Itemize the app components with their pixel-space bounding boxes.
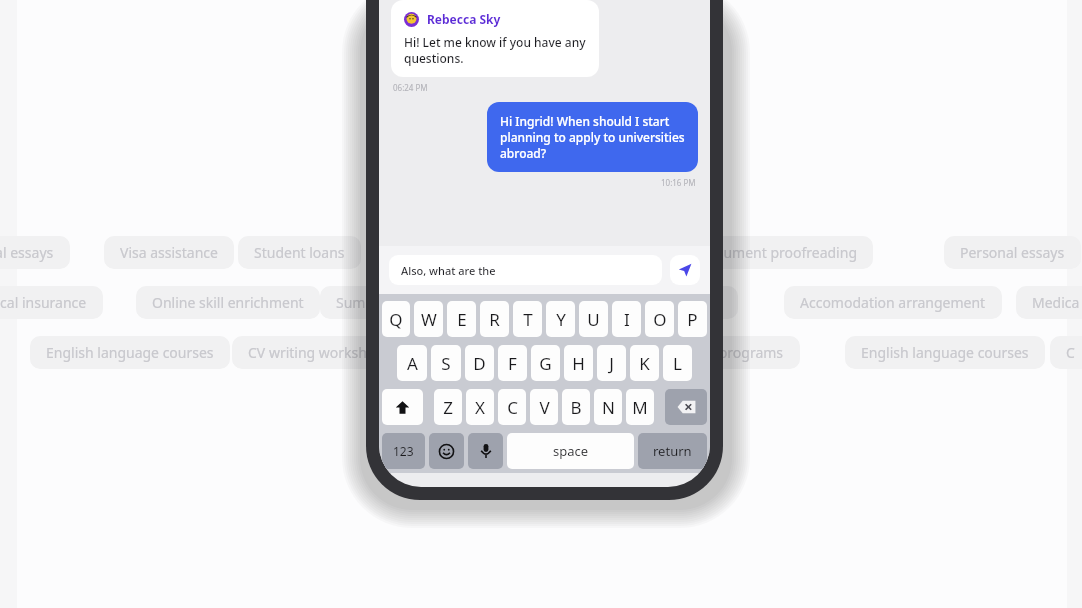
staticText: CV writing worksh — [248, 343, 367, 362]
button[interactable]: Medica — [1016, 286, 1082, 319]
button[interactable]: S — [431, 345, 461, 381]
staticText: 123 — [393, 443, 414, 459]
button[interactable]: Send — [670, 255, 700, 285]
staticText: English language courses — [861, 343, 1029, 362]
button[interactable]: CV writing worksh — [232, 336, 383, 369]
button[interactable]: F — [498, 345, 527, 381]
button[interactable]: 123 — [382, 433, 425, 469]
button[interactable]: Online skill enrichment — [136, 286, 320, 319]
staticText: C — [1066, 343, 1075, 362]
staticText: Also, what are the — [401, 263, 496, 278]
button[interactable]: Hi Ingrid! When should I start planning … — [487, 102, 698, 172]
staticText: Rebecca Sky — [427, 11, 501, 27]
button[interactable]: Z — [434, 389, 462, 425]
staticText: I — [624, 308, 630, 331]
staticText: Summ — [336, 293, 379, 312]
staticText: Q — [389, 308, 403, 331]
button[interactable]: Rebecca Sky — [391, 0, 599, 77]
button[interactable]: N — [594, 389, 622, 425]
staticText: C — [507, 396, 518, 419]
button[interactable]: P — [678, 301, 707, 337]
staticText: M — [632, 396, 648, 419]
button[interactable]: Y — [546, 301, 575, 337]
button[interactable]: Visa assistance — [104, 236, 234, 269]
button[interactable]: English language courses — [845, 336, 1045, 369]
button[interactable]: Voice input — [468, 433, 503, 469]
button[interactable]: V — [530, 389, 558, 425]
staticText: G — [539, 352, 552, 375]
button[interactable]: Backspace — [665, 389, 707, 425]
staticText: 10:16 PM — [661, 177, 696, 188]
staticText: K — [639, 352, 650, 375]
staticText: B — [570, 396, 582, 419]
button[interactable]: upport — [660, 286, 738, 319]
button[interactable]: Personal essays — [944, 236, 1081, 269]
button[interactable]: Student loans — [238, 236, 361, 269]
staticText: S — [441, 352, 451, 375]
button[interactable]: J — [597, 345, 626, 381]
staticText: Accomodation arrangement — [800, 293, 986, 312]
button[interactable]: M — [626, 389, 654, 425]
button[interactable]: Emoji — [429, 433, 464, 469]
button[interactable]: C — [1050, 336, 1082, 369]
button[interactable]: onal essays — [0, 236, 70, 269]
staticText: Online skill enrichment — [152, 293, 304, 312]
staticText: 06:24 PM — [393, 82, 428, 93]
button[interactable]: return — [638, 433, 707, 469]
staticText: N — [602, 396, 615, 419]
button[interactable]: C — [498, 389, 526, 425]
staticText: Document proofreading — [698, 243, 857, 262]
button[interactable]: X — [466, 389, 494, 425]
button[interactable]: broad programs — [660, 336, 800, 369]
staticText: U — [587, 308, 600, 331]
button[interactable]: Also, what are the — [389, 255, 662, 285]
button[interactable]: Summ — [320, 286, 395, 319]
staticText: R — [489, 308, 500, 331]
button[interactable]: Accomodation arrangement — [784, 286, 1002, 319]
staticText: Student loans — [254, 243, 345, 262]
button[interactable]: U — [579, 301, 608, 337]
staticText: edical insurance — [0, 293, 87, 312]
button[interactable]: T — [513, 301, 542, 337]
staticText: upport — [676, 293, 722, 312]
button[interactable]: W — [414, 301, 443, 337]
staticText: P — [687, 308, 698, 331]
button[interactable]: edical insurance — [0, 286, 103, 319]
button[interactable]: D — [465, 345, 494, 381]
button[interactable]: B — [562, 389, 590, 425]
button[interactable]: R — [480, 301, 509, 337]
staticText: T — [523, 308, 533, 331]
staticText: H — [572, 352, 585, 375]
staticText: Medica — [1032, 293, 1080, 312]
button[interactable]: English language courses — [30, 336, 230, 369]
staticText: Visa assistance — [120, 243, 218, 262]
staticText: D — [473, 352, 486, 375]
staticText: Y — [556, 308, 566, 331]
button[interactable]: L — [663, 345, 692, 381]
button[interactable]: A — [397, 345, 427, 381]
button[interactable]: space — [507, 433, 634, 469]
staticText: space — [553, 442, 589, 460]
button[interactable]: O — [645, 301, 674, 337]
button[interactable]: G — [531, 345, 560, 381]
button[interactable]: Shift — [382, 389, 423, 425]
button[interactable]: E — [447, 301, 476, 337]
button[interactable]: K — [630, 345, 659, 381]
staticText: broad programs — [676, 343, 784, 362]
staticText: X — [475, 396, 485, 419]
button[interactable]: I — [612, 301, 641, 337]
staticText: Z — [443, 396, 453, 419]
staticText: E — [457, 308, 467, 331]
staticText: J — [609, 352, 614, 375]
button[interactable]: Q — [382, 301, 410, 337]
staticText: return — [653, 442, 692, 460]
staticText: Personal essays — [960, 243, 1065, 262]
staticText: F — [508, 352, 517, 375]
staticText: onal essays — [0, 243, 54, 262]
staticText: Hi! Let me know if you have any question… — [404, 34, 586, 66]
staticText: A — [407, 352, 418, 375]
staticText: L — [673, 352, 682, 375]
button[interactable]: H — [564, 345, 593, 381]
staticText: English language courses — [46, 343, 214, 362]
button[interactable]: Document proofreading — [682, 236, 873, 269]
